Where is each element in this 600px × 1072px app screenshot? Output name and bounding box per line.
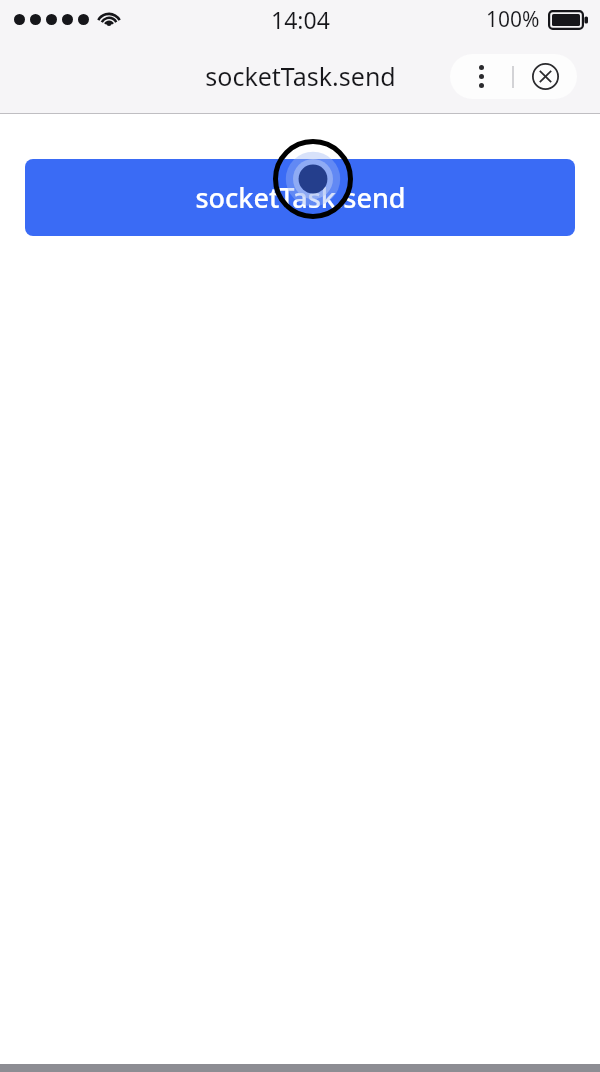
staticText: socketTask.send — [195, 179, 406, 216]
staticText: 14:04 — [271, 4, 330, 35]
button[interactable]: More options — [450, 54, 512, 99]
staticText: 100% — [486, 5, 540, 34]
button[interactable]: socketTask.send — [25, 159, 575, 236]
button[interactable]: Close — [514, 54, 577, 99]
staticText: socketTask.send — [205, 59, 396, 93]
